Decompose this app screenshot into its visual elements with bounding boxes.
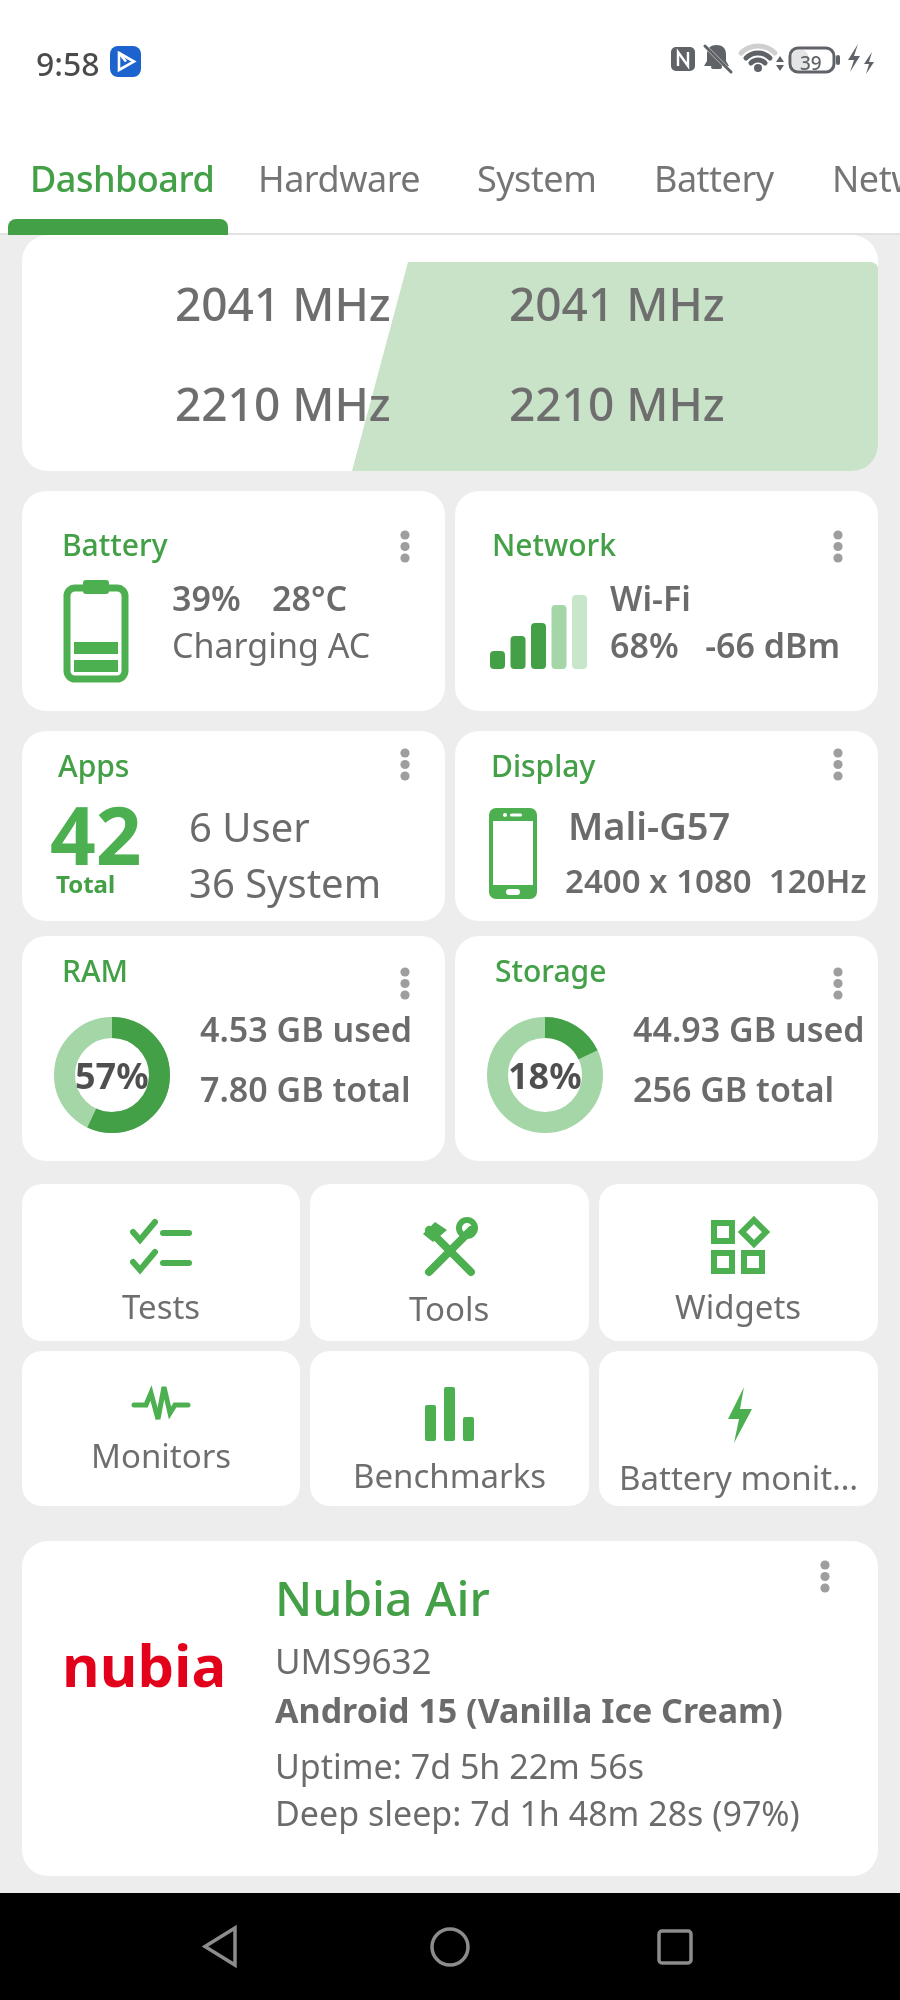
- button[interactable]: [825, 745, 851, 795]
- button[interactable]: Battery: [654, 154, 774, 203]
- button[interactable]: 2041 MHz: [22, 235, 878, 471]
- staticText: 28°C: [272, 575, 348, 621]
- staticText: Uptime: 7d 5h 22m 56s: [275, 1743, 644, 1789]
- button[interactable]: [415, 1913, 485, 1983]
- staticText: 39%: [172, 575, 241, 621]
- staticText: Benchmarks: [353, 1453, 547, 1498]
- button[interactable]: [825, 964, 851, 1014]
- staticText: Battery monit…: [619, 1455, 859, 1500]
- staticText: Charging AC: [172, 622, 371, 668]
- staticText: Network: [832, 154, 900, 203]
- button[interactable]: Widgets: [599, 1184, 878, 1341]
- staticText: Network: [492, 524, 616, 565]
- button[interactable]: RAM: [22, 936, 445, 1161]
- staticText: Storage: [495, 950, 607, 991]
- button[interactable]: Dashboard: [30, 154, 215, 203]
- staticText: 7.80 GB total: [200, 1066, 411, 1112]
- staticText: Total: [56, 867, 116, 900]
- button[interactable]: [640, 1913, 710, 1983]
- button[interactable]: [825, 527, 851, 577]
- staticText: Nubia Air: [275, 1565, 490, 1630]
- staticText: 256 GB total: [633, 1066, 835, 1112]
- staticText: Android 15 (Vanilla Ice Cream): [275, 1687, 783, 1733]
- staticText: 18%: [508, 1051, 582, 1100]
- button[interactable]: Display: [455, 731, 878, 921]
- button[interactable]: Battery monit…: [599, 1351, 878, 1506]
- button[interactable]: Benchmarks: [310, 1351, 589, 1506]
- staticText: nubia: [62, 1625, 227, 1704]
- button[interactable]: Hardware: [258, 154, 421, 203]
- staticText: Tools: [409, 1286, 490, 1331]
- staticText: 4.53 GB used: [200, 1006, 413, 1052]
- staticText: 68% -66 dBm: [610, 622, 841, 668]
- button[interactable]: Nubia Air: [22, 1541, 878, 1876]
- staticText: 9:58: [36, 42, 100, 86]
- button[interactable]: Storage: [455, 936, 878, 1161]
- staticText: Battery: [654, 154, 774, 203]
- button[interactable]: [392, 964, 418, 1014]
- button[interactable]: Network: [832, 154, 900, 203]
- staticText: 6 User: [189, 799, 310, 853]
- staticText: Mali-G57: [568, 799, 731, 851]
- button[interactable]: Battery: [22, 491, 445, 711]
- staticText: 44.93 GB used: [633, 1006, 865, 1052]
- button[interactable]: [392, 527, 418, 577]
- button[interactable]: Network: [455, 491, 878, 711]
- staticText: Wi-Fi: [610, 575, 691, 621]
- staticText: 42: [50, 779, 142, 888]
- staticText: 2400 x 1080 120Hz: [565, 858, 867, 903]
- staticText: Apps: [58, 745, 130, 786]
- staticText: 57%: [75, 1051, 149, 1100]
- button[interactable]: Monitors: [22, 1351, 300, 1506]
- button[interactable]: Tools: [310, 1184, 589, 1341]
- button[interactable]: Apps: [22, 731, 445, 921]
- staticText: Widgets: [675, 1284, 802, 1329]
- staticText: Deep sleep: 7d 1h 48m 28s (97%): [275, 1790, 800, 1836]
- staticText: 2041 MHz: [509, 272, 725, 332]
- button[interactable]: [812, 1557, 838, 1607]
- staticText: Dashboard: [30, 154, 215, 203]
- staticText: 2210 MHz: [509, 372, 725, 432]
- staticText: System: [477, 154, 597, 203]
- staticText: Display: [491, 745, 596, 786]
- button[interactable]: [392, 745, 418, 795]
- staticText: RAM: [62, 950, 129, 991]
- staticText: Battery: [62, 524, 168, 565]
- button[interactable]: Tests: [22, 1184, 300, 1341]
- staticText: Hardware: [258, 154, 421, 203]
- button[interactable]: [190, 1913, 260, 1983]
- staticText: 2210 MHz: [175, 372, 391, 432]
- staticText: Monitors: [91, 1433, 232, 1478]
- staticText: UMS9632: [275, 1637, 432, 1685]
- staticText: Tests: [122, 1284, 201, 1329]
- staticText: 2041 MHz: [175, 272, 391, 332]
- staticText: 36 System: [189, 855, 382, 909]
- button[interactable]: System: [477, 154, 597, 203]
- staticText: 39: [800, 50, 822, 76]
